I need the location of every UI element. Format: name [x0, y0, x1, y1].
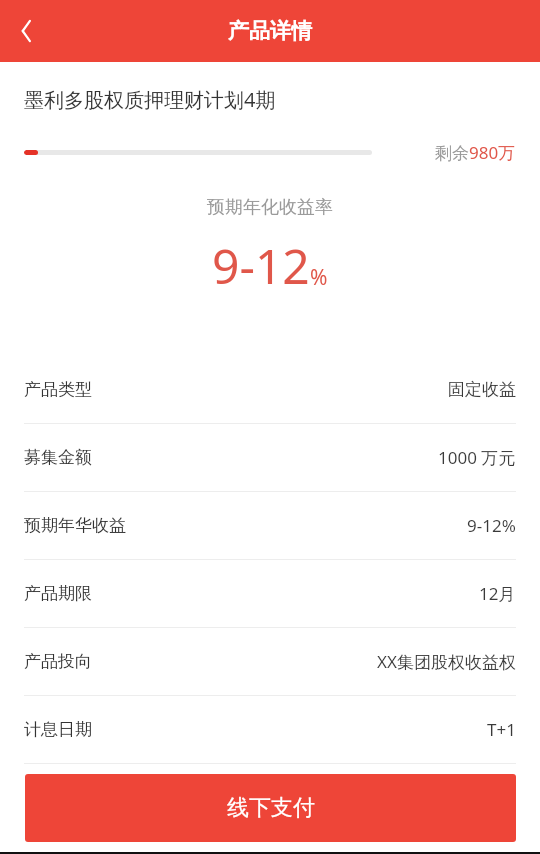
button[interactable]: 预期年华收益 [0, 492, 540, 559]
staticText: T+1 [487, 718, 516, 741]
staticText: % [310, 263, 328, 292]
button[interactable]: 计息日期 [0, 696, 540, 763]
staticText: 剩余980万 [435, 141, 516, 164]
staticText: 线下支付 [227, 794, 315, 822]
staticText: 12月 [479, 582, 516, 605]
button[interactable]: Back [0, 3, 56, 59]
staticText: 固定收益 [448, 379, 516, 400]
button[interactable]: 募集金额 [0, 424, 540, 491]
staticText: 产品详情 [228, 18, 312, 44]
staticText: 预期年华收益 [24, 515, 126, 536]
staticText: 9-12 [212, 233, 310, 298]
button[interactable]: 线下支付 [25, 774, 516, 842]
staticText: 计息日期 [24, 719, 92, 740]
staticText: XX集团股权收益权 [377, 650, 516, 673]
staticText: 9-12% [467, 514, 516, 537]
staticText: 产品类型 [24, 379, 92, 400]
button[interactable]: 产品投向 [0, 628, 540, 695]
staticText: 预期年化收益率 [207, 196, 333, 219]
button[interactable]: 产品期限 [0, 560, 540, 627]
button[interactable]: 产品类型 [0, 356, 540, 423]
staticText: 1000 万元 [438, 446, 516, 469]
staticText: 产品期限 [24, 583, 92, 604]
staticText: 墨利多股权质押理财计划4期 [24, 86, 276, 113]
staticText: 募集金额 [24, 447, 92, 468]
staticText: 产品投向 [24, 651, 92, 672]
